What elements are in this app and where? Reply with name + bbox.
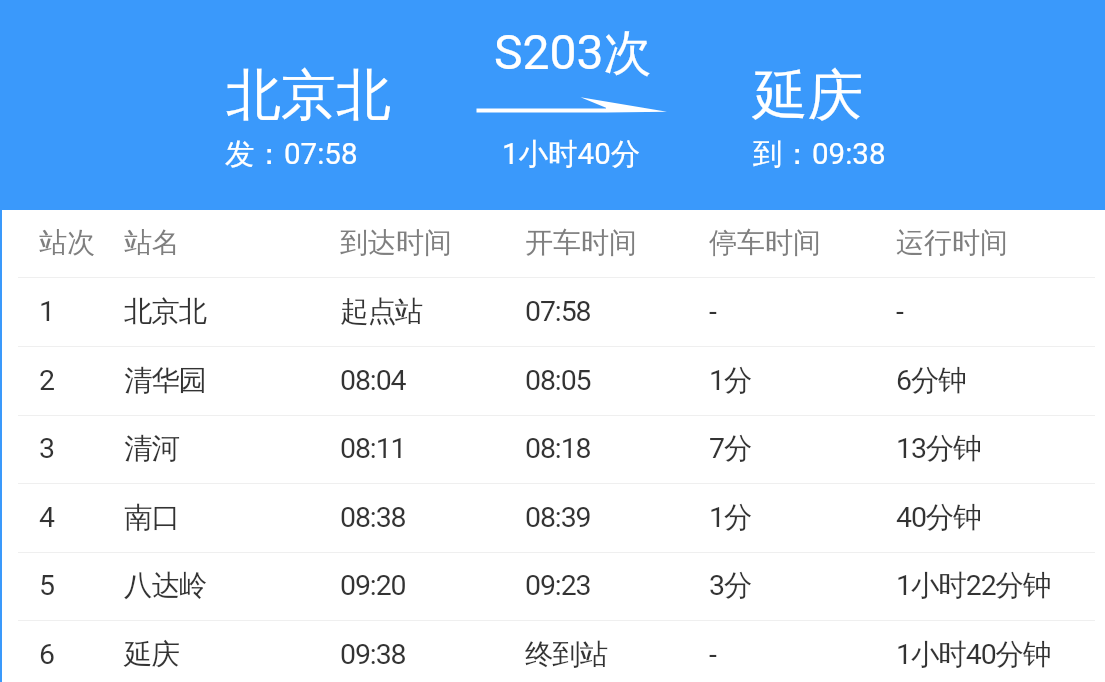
- staticText: 2: [39, 364, 54, 397]
- staticText: 40分钟: [896, 500, 981, 536]
- staticText: 6分钟: [896, 363, 966, 399]
- staticText: 北京北: [226, 61, 391, 130]
- staticText: 4: [39, 501, 54, 534]
- staticText: 7分: [709, 431, 752, 467]
- staticText: 到达时间: [340, 225, 452, 260]
- staticText: 08:38: [340, 501, 406, 534]
- staticText: 清华园: [124, 363, 207, 399]
- staticText: 站名: [124, 225, 180, 260]
- staticText: 1分: [709, 500, 752, 536]
- staticText: 1小时40分: [502, 136, 641, 173]
- staticText: S203次: [494, 23, 652, 83]
- staticText: 08:39: [525, 501, 591, 534]
- staticText: 开车时间: [525, 225, 637, 260]
- staticText: -: [896, 295, 903, 328]
- staticText: 延庆: [124, 637, 179, 673]
- button[interactable]: 2: [0, 347, 1105, 416]
- staticText: 5: [39, 569, 54, 602]
- staticText: 08:05: [525, 364, 591, 397]
- staticText: 发：07:58: [225, 136, 358, 173]
- staticText: -: [709, 295, 716, 328]
- staticText: 13分钟: [896, 431, 981, 467]
- staticText: 08:04: [340, 364, 406, 397]
- staticText: 站次: [39, 225, 95, 260]
- staticText: 清河: [124, 431, 179, 467]
- staticText: 07:58: [525, 295, 591, 328]
- staticText: 08:18: [525, 432, 591, 465]
- staticText: 1: [39, 295, 54, 328]
- staticText: 北京北: [124, 294, 207, 330]
- button[interactable]: 4: [0, 484, 1105, 553]
- button[interactable]: 1: [0, 278, 1105, 347]
- staticText: 1小时40分钟: [896, 637, 1051, 673]
- button[interactable]: 3: [0, 415, 1105, 484]
- staticText: 南口: [124, 500, 179, 536]
- staticText: 6: [39, 638, 54, 671]
- staticText: 08:11: [340, 432, 406, 465]
- other: Direction of travel: [470, 90, 675, 120]
- staticText: 停车时间: [709, 225, 821, 260]
- staticText: 1小时22分钟: [896, 568, 1051, 604]
- staticText: 起点站: [340, 294, 423, 330]
- staticText: 延庆: [753, 61, 863, 130]
- staticText: 09:38: [340, 638, 406, 671]
- staticText: 运行时间: [896, 225, 1008, 260]
- staticText: 到：09:38: [753, 136, 886, 173]
- staticText: 3: [39, 432, 54, 465]
- button[interactable]: 5: [0, 552, 1105, 621]
- staticText: 09:20: [340, 569, 406, 602]
- staticText: 09:23: [525, 569, 591, 602]
- staticText: 3分: [709, 568, 752, 604]
- staticText: 终到站: [525, 637, 608, 673]
- staticText: 1分: [709, 363, 752, 399]
- button[interactable]: 6: [0, 621, 1105, 682]
- staticText: 八达岭: [124, 568, 207, 604]
- staticText: -: [709, 638, 716, 671]
- button[interactable]: 北京北: [0, 0, 1105, 210]
